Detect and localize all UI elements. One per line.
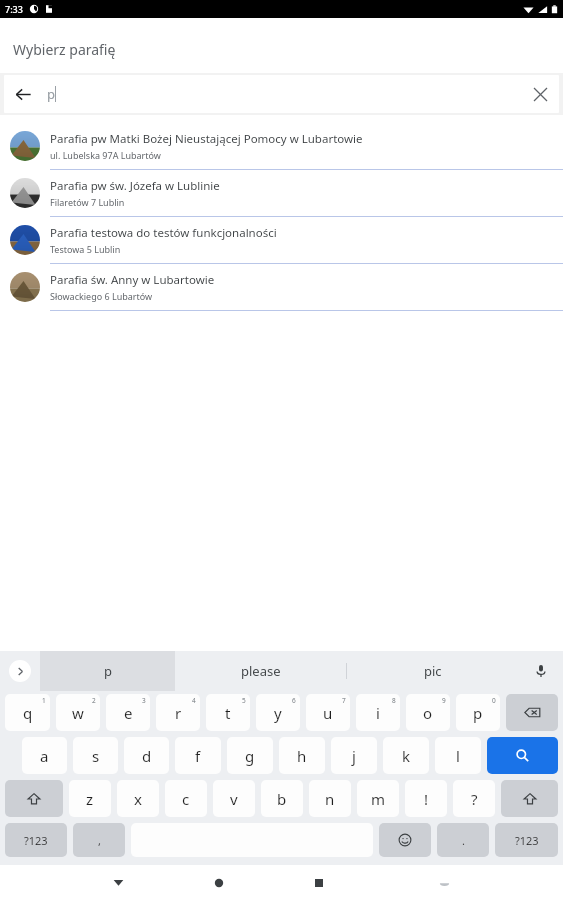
- button[interactable]: n: [309, 780, 351, 817]
- staticText: h: [297, 746, 307, 766]
- staticText: y: [274, 703, 282, 723]
- staticText: w: [72, 703, 84, 723]
- button[interactable]: g: [227, 737, 273, 774]
- staticText: 6: [292, 696, 296, 705]
- staticText: ?: [471, 789, 478, 809]
- staticText: j: [352, 746, 356, 766]
- button[interactable]: f: [175, 737, 221, 774]
- staticText: t: [225, 703, 231, 723]
- button[interactable]: s: [73, 737, 118, 774]
- button[interactable]: b: [261, 780, 303, 817]
- button[interactable]: u: [306, 694, 350, 731]
- staticText: v: [230, 789, 238, 809]
- staticText: 8: [392, 696, 396, 705]
- staticText: 0: [492, 696, 496, 705]
- staticText: ,: [98, 833, 101, 848]
- button[interactable]: Clear: [521, 75, 559, 113]
- button[interactable]: Shift: [5, 780, 63, 817]
- button[interactable]: Home: [201, 865, 236, 900]
- button[interactable]: please: [175, 651, 346, 691]
- button[interactable]: q: [5, 694, 50, 731]
- button[interactable]: !: [405, 780, 447, 817]
- staticText: 1: [42, 696, 46, 705]
- button[interactable]: Emoji: [379, 823, 431, 857]
- button[interactable]: k: [383, 737, 429, 774]
- staticText: m: [371, 789, 386, 809]
- button[interactable]: pic: [347, 651, 518, 691]
- staticText: o: [423, 703, 433, 723]
- button[interactable]: Recents: [301, 865, 336, 900]
- button[interactable]: j: [331, 737, 377, 774]
- button[interactable]: l: [435, 737, 481, 774]
- button[interactable]: e: [106, 694, 150, 731]
- button[interactable]: o: [406, 694, 450, 731]
- button[interactable]: d: [124, 737, 169, 774]
- button[interactable]: a: [22, 737, 67, 774]
- button[interactable]: Shift: [501, 780, 558, 817]
- staticText: Słowackiego 6 Lubartów: [50, 290, 153, 302]
- staticText: Wybierz parafię: [13, 40, 116, 59]
- button[interactable]: Parafia pw św. Józefa w Lublinie: [0, 170, 563, 217]
- staticText: p: [104, 662, 112, 680]
- button[interactable]: Back: [4, 75, 42, 113]
- button[interactable]: z: [69, 780, 111, 817]
- button[interactable]: Comma: [73, 823, 125, 857]
- staticText: Filaretów 7 Lublin: [50, 196, 125, 208]
- button[interactable]: Back: [101, 865, 136, 900]
- button[interactable]: Parafia św. Anny w Lubartowie: [0, 264, 563, 311]
- button[interactable]: m: [357, 780, 399, 817]
- button[interactable]: p: [40, 651, 175, 691]
- staticText: ?123: [515, 833, 539, 848]
- staticText: l: [456, 746, 460, 766]
- button[interactable]: v: [213, 780, 255, 817]
- staticText: 3: [142, 696, 146, 705]
- staticText: please: [241, 662, 281, 680]
- staticText: 7:33: [5, 3, 23, 15]
- button[interactable]: w: [56, 694, 100, 731]
- button[interactable]: Parafia pw Matki Bożej Nieustającej Pomo…: [0, 123, 563, 170]
- staticText: Parafia pw Matki Bożej Nieustającej Pomo…: [50, 131, 363, 147]
- staticText: pic: [424, 662, 442, 680]
- staticText: e: [124, 703, 133, 723]
- staticText: p: [47, 85, 55, 103]
- button[interactable]: Backspace: [506, 694, 558, 731]
- button[interactable]: Voice input: [518, 651, 563, 691]
- button[interactable]: Switch keyboard: [427, 865, 462, 900]
- staticText: Testowa 5 Lublin: [50, 243, 121, 255]
- button[interactable]: h: [279, 737, 325, 774]
- button[interactable]: c: [165, 780, 207, 817]
- button[interactable]: ?123: [5, 823, 67, 857]
- staticText: 7: [342, 696, 346, 705]
- staticText: c: [182, 789, 190, 809]
- button[interactable]: t: [206, 694, 250, 731]
- button[interactable]: p: [456, 694, 500, 731]
- staticText: ul. Lubelska 97A Lubartów: [50, 149, 161, 161]
- staticText: f: [195, 746, 201, 766]
- staticText: p: [473, 703, 483, 723]
- staticText: 2: [92, 696, 96, 705]
- button[interactable]: Period: [437, 823, 489, 857]
- button[interactable]: More suggestions: [0, 651, 40, 691]
- staticText: n: [325, 789, 335, 809]
- staticText: z: [86, 789, 94, 809]
- staticText: b: [277, 789, 287, 809]
- staticText: 4: [192, 696, 196, 705]
- staticText: x: [134, 789, 142, 809]
- button[interactable]: ?123: [495, 823, 558, 857]
- button[interactable]: Search: [487, 737, 558, 774]
- button[interactable]: Parafia testowa do testów funkcjonalnośc…: [0, 217, 563, 264]
- staticText: d: [142, 746, 152, 766]
- staticText: Parafia św. Anny w Lubartowie: [50, 272, 215, 288]
- staticText: !: [424, 789, 429, 809]
- staticText: Parafia testowa do testów funkcjonalnośc…: [50, 225, 277, 241]
- staticText: s: [92, 746, 100, 766]
- button[interactable]: x: [117, 780, 159, 817]
- staticText: q: [23, 703, 33, 723]
- button[interactable]: ?: [453, 780, 495, 817]
- button[interactable]: r: [156, 694, 200, 731]
- staticText: ?123: [24, 833, 48, 848]
- button[interactable]: i: [356, 694, 400, 731]
- staticText: r: [175, 703, 182, 723]
- button[interactable]: y: [256, 694, 300, 731]
